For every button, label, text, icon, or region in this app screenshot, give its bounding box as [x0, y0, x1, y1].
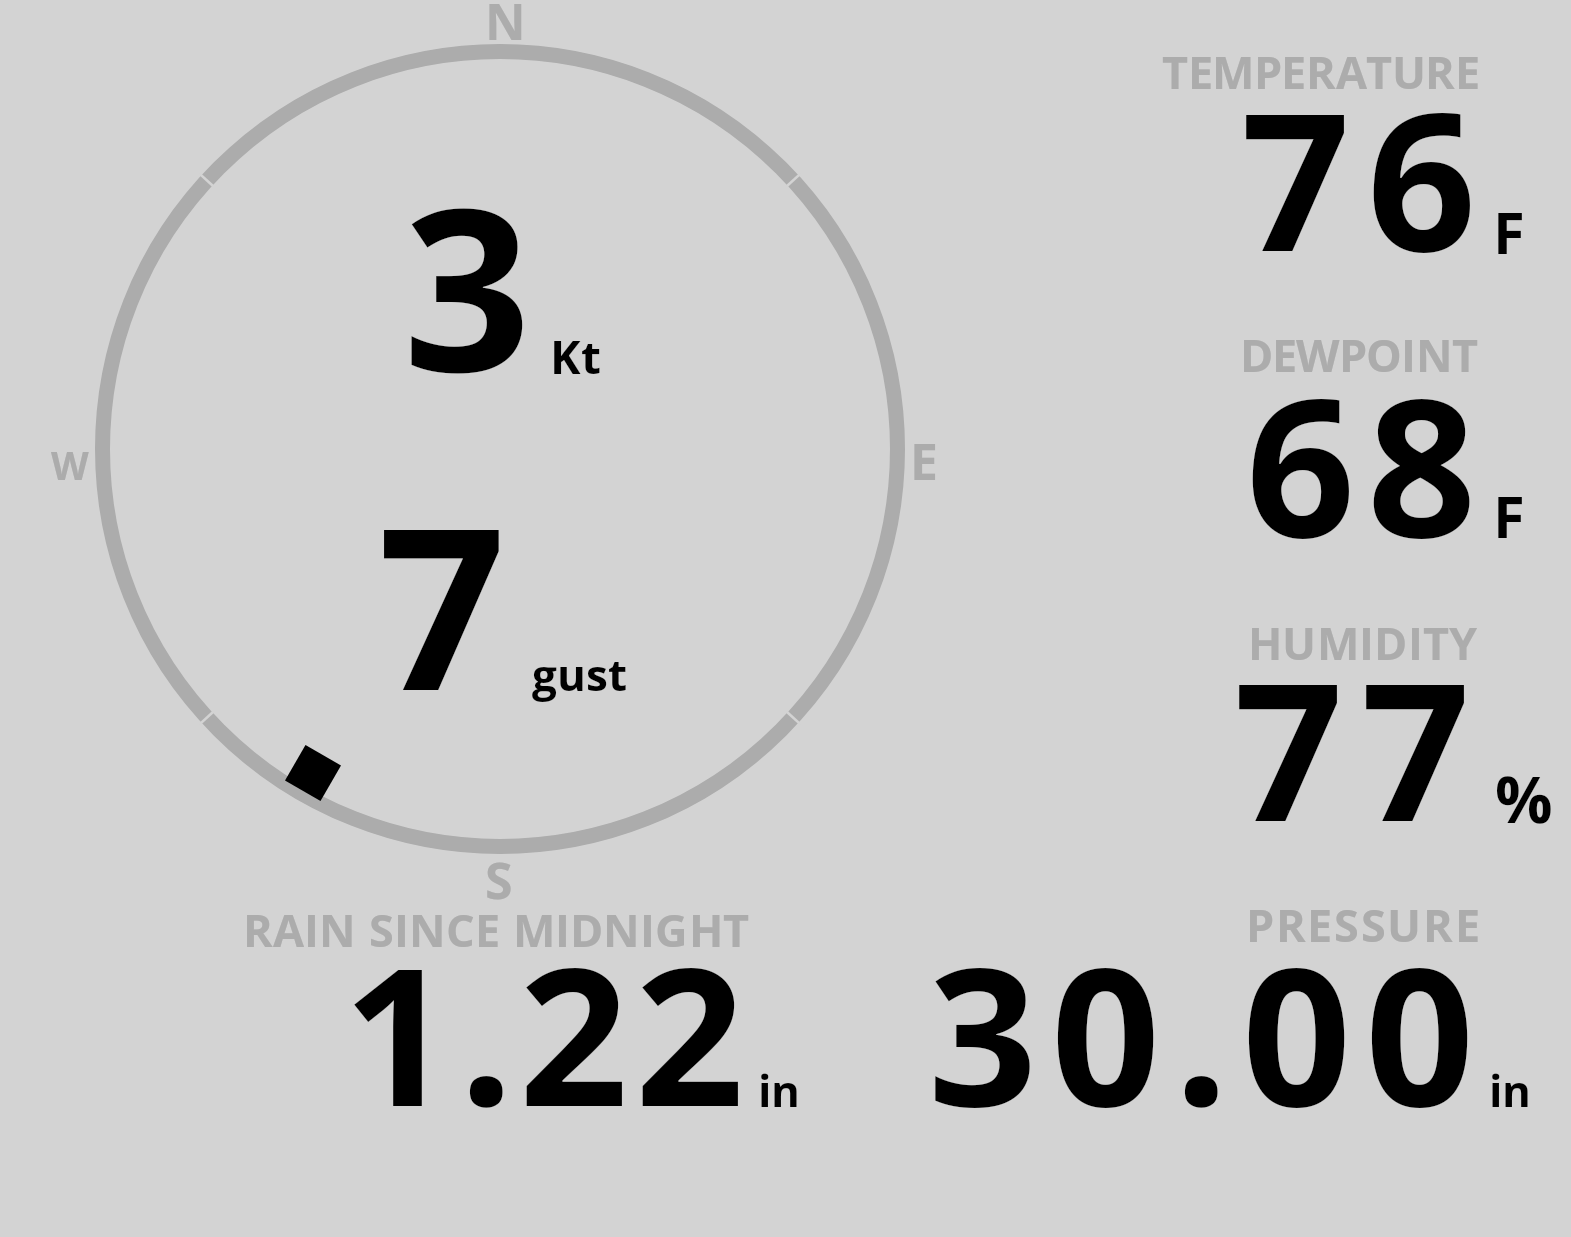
- button[interactable]: Wind direction and speed dial: [60, 0, 940, 900]
- button[interactable]: Rain since midnight 1.22 in: [230, 895, 830, 1125]
- button[interactable]: Pressure 30.00 in: [900, 895, 1560, 1125]
- button[interactable]: Dewpoint 68 F: [1100, 315, 1571, 585]
- button[interactable]: Temperature 76 F: [1100, 30, 1571, 300]
- button[interactable]: Humidity 77 percent: [1100, 600, 1571, 870]
